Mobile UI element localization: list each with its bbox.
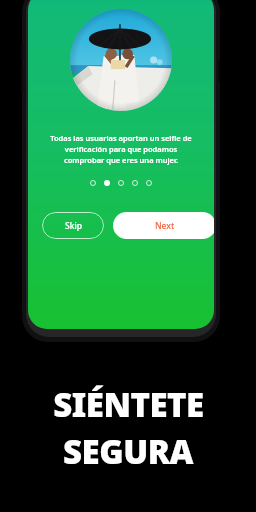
staticText: Next [155, 220, 175, 232]
staticText: SEGURA [63, 429, 193, 474]
button[interactable]: Next [113, 212, 214, 239]
staticText: SIÉNTETE [53, 382, 204, 427]
staticText: Skip [65, 220, 82, 232]
button[interactable]: Skip [42, 212, 104, 239]
staticText: Todas las usuarias aportan un selfie de … [44, 133, 198, 165]
